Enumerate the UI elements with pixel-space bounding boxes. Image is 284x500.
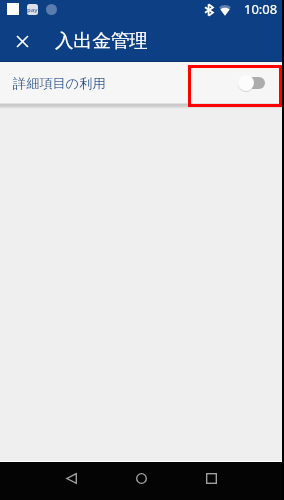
button[interactable]: Toggle detail items: [238, 73, 265, 90]
button[interactable]: Home: [119, 459, 163, 497]
staticText: 入出金管理: [55, 29, 148, 52]
button[interactable]: Back: [49, 459, 93, 497]
staticText: 詳細項目の利用: [13, 75, 106, 92]
button[interactable]: 詳細項目の利用: [0, 62, 284, 104]
button[interactable]: Recents: [189, 459, 233, 497]
button[interactable]: Close: [2, 21, 42, 61]
staticText: 10:08: [244, 0, 278, 18]
staticText: pay: [27, 6, 38, 14]
